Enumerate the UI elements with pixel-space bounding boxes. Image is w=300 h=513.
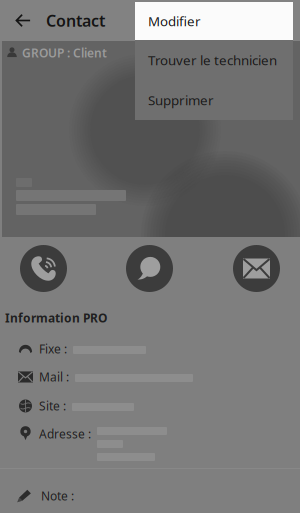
staticText: Contact <box>46 10 105 31</box>
staticText: Note : <box>41 488 74 504</box>
staticText: Site : <box>39 398 66 414</box>
staticText: Modifier <box>148 12 201 30</box>
button[interactable]: Back <box>0 0 46 41</box>
button[interactable]: Trouver le technicien <box>135 40 293 80</box>
button[interactable]: Email <box>233 245 280 292</box>
staticText: Trouver le technicien <box>148 51 277 69</box>
button[interactable]: Message <box>126 245 173 292</box>
staticText: Mail : <box>39 369 69 385</box>
staticText: Supprimer <box>148 91 214 109</box>
button[interactable]: Modifier <box>135 2 293 40</box>
staticText: Adresse : <box>39 426 91 442</box>
button[interactable]: Call <box>20 245 67 292</box>
staticText: Fixe : <box>39 341 67 357</box>
staticText: Information PRO <box>5 310 107 326</box>
staticText: GROUP : Client <box>22 45 107 61</box>
button[interactable]: Supprimer <box>135 80 293 120</box>
